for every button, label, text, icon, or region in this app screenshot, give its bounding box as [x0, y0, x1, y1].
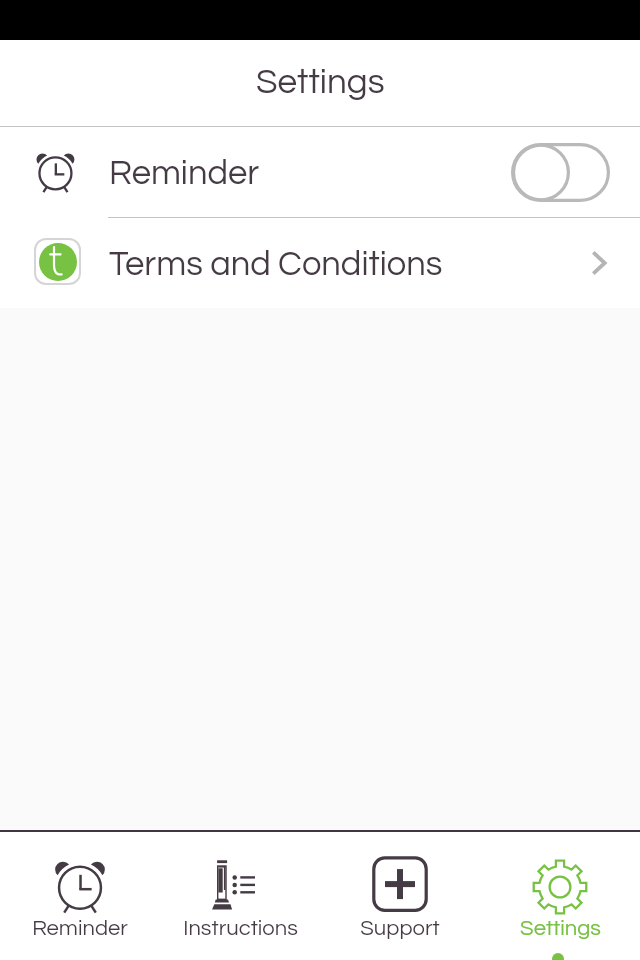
button[interactable]: Settings [480, 832, 640, 960]
staticText: Settings [256, 64, 385, 100]
button[interactable]: Support [320, 832, 480, 960]
button[interactable]: Reminder [0, 127, 640, 217]
staticText: Support [360, 917, 440, 940]
button[interactable]: Instructions [160, 832, 320, 960]
staticText: Reminder [109, 156, 260, 192]
button[interactable]: Reminder toggle [511, 143, 610, 202]
staticText: Settings [520, 917, 601, 940]
staticText: Reminder [32, 917, 128, 940]
button[interactable]: Terms and Conditions [0, 218, 640, 308]
staticText: Terms and Conditions [109, 247, 443, 283]
staticText: Instructions [183, 917, 298, 940]
button[interactable]: Reminder [0, 832, 160, 960]
